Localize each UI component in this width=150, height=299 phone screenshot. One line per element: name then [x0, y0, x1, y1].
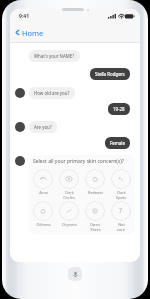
- button[interactable]: Acne: [31, 169, 55, 195]
- button[interactable]: How old are you?: [29, 87, 75, 99]
- staticText: Acne: [39, 190, 48, 195]
- button[interactable]: Dryness: [57, 201, 81, 227]
- button[interactable]: Oiliness: [31, 201, 55, 227]
- button[interactable]: Dark: [57, 169, 81, 200]
- button[interactable]: Open: [83, 201, 107, 232]
- staticText: sure: [117, 227, 125, 232]
- staticText: Open: [90, 222, 100, 227]
- staticText: Redness: [88, 190, 103, 195]
- button[interactable]: Microphone: [68, 267, 82, 281]
- button[interactable]: Home: [14, 23, 140, 42]
- staticText: 19-28: [113, 106, 125, 112]
- button[interactable]: Dark: [109, 169, 133, 200]
- staticText: Are you?: [34, 124, 52, 130]
- button[interactable]: Are you?: [29, 121, 57, 133]
- staticText: ?: [119, 206, 123, 216]
- staticText: How old are you?: [34, 90, 70, 96]
- staticText: Spots: [116, 195, 126, 200]
- button[interactable]: Female: [105, 137, 130, 149]
- staticText: Female: [110, 140, 125, 146]
- staticText: Not: [118, 222, 125, 227]
- button[interactable]: Redness: [83, 169, 107, 195]
- staticText: Home: [22, 28, 44, 38]
- staticText: Stella Rodgers: [95, 71, 125, 77]
- staticText: Circles: [63, 195, 75, 200]
- button[interactable]: Stella Rodgers: [90, 68, 130, 80]
- staticText: Pores: [90, 227, 101, 232]
- staticText: Select all your primary skin concern(s)?: [33, 158, 124, 165]
- staticText: Dark: [117, 190, 126, 195]
- staticText: Dark: [65, 190, 74, 195]
- button[interactable]: 19-28: [108, 103, 130, 115]
- staticText: Oiliness: [36, 222, 51, 227]
- staticText: What's your NAME?: [34, 53, 75, 59]
- staticText: Dryness: [62, 222, 77, 227]
- button[interactable]: What's your NAME?: [29, 50, 80, 62]
- staticText: 9:41: [19, 13, 29, 20]
- button[interactable]: ?: [109, 201, 133, 232]
